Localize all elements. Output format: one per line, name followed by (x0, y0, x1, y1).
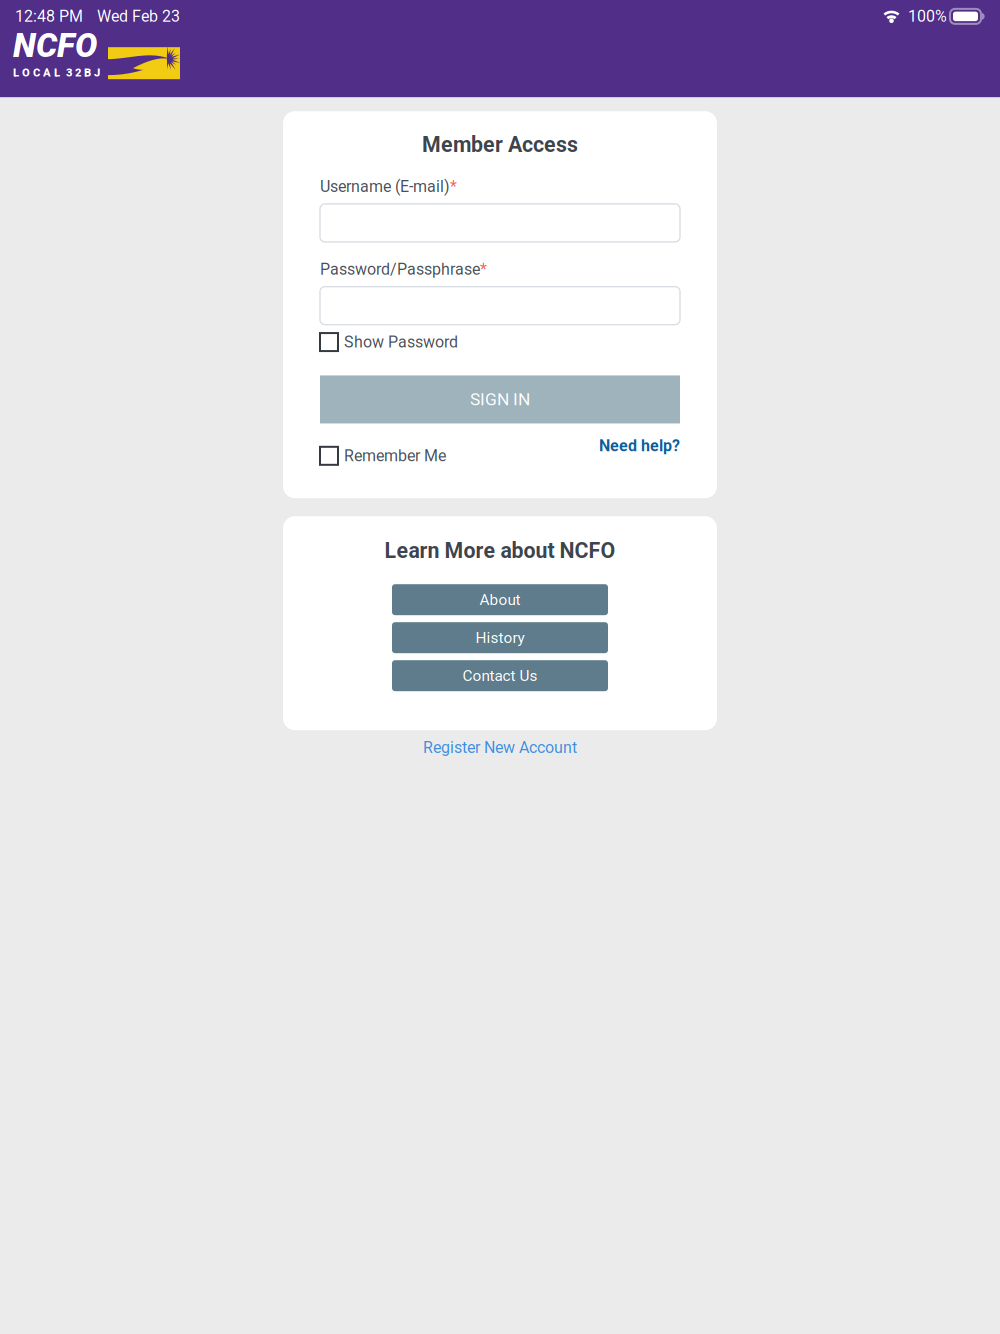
staticText: Wed Feb 23 (97, 7, 180, 26)
button[interactable]: Contact Us (392, 660, 608, 691)
button[interactable]: Remember Me (320, 446, 446, 465)
staticText: SIGN IN (470, 389, 530, 410)
button[interactable]: History (392, 622, 608, 653)
staticText: * (480, 260, 487, 279)
staticText: Password/Passphrase (320, 260, 480, 279)
staticText: Need help? (599, 436, 680, 455)
staticText: L O C A L 3 2 B J (13, 66, 100, 79)
staticText: Member Access (422, 132, 578, 157)
button[interactable]: About (392, 584, 608, 615)
staticText: Username (E-mail) (320, 177, 450, 196)
staticText: 100% (908, 7, 947, 26)
button[interactable]: Show Password (320, 333, 458, 351)
staticText: NCFO (13, 26, 97, 65)
staticText: Show Password (344, 333, 458, 351)
button[interactable]: Register New Account (423, 738, 577, 757)
staticText: About (479, 591, 520, 609)
staticText: Register New Account (423, 738, 577, 757)
button[interactable]: Need help? (599, 446, 680, 465)
button[interactable]: SIGN IN (320, 375, 680, 423)
staticText: Remember Me (344, 446, 446, 465)
staticText: Contact Us (462, 667, 537, 685)
staticText: * (450, 177, 457, 196)
staticText: 12:48 PM (15, 7, 83, 26)
staticText: History (475, 629, 524, 647)
staticText: Learn More about NCFO (384, 538, 615, 563)
